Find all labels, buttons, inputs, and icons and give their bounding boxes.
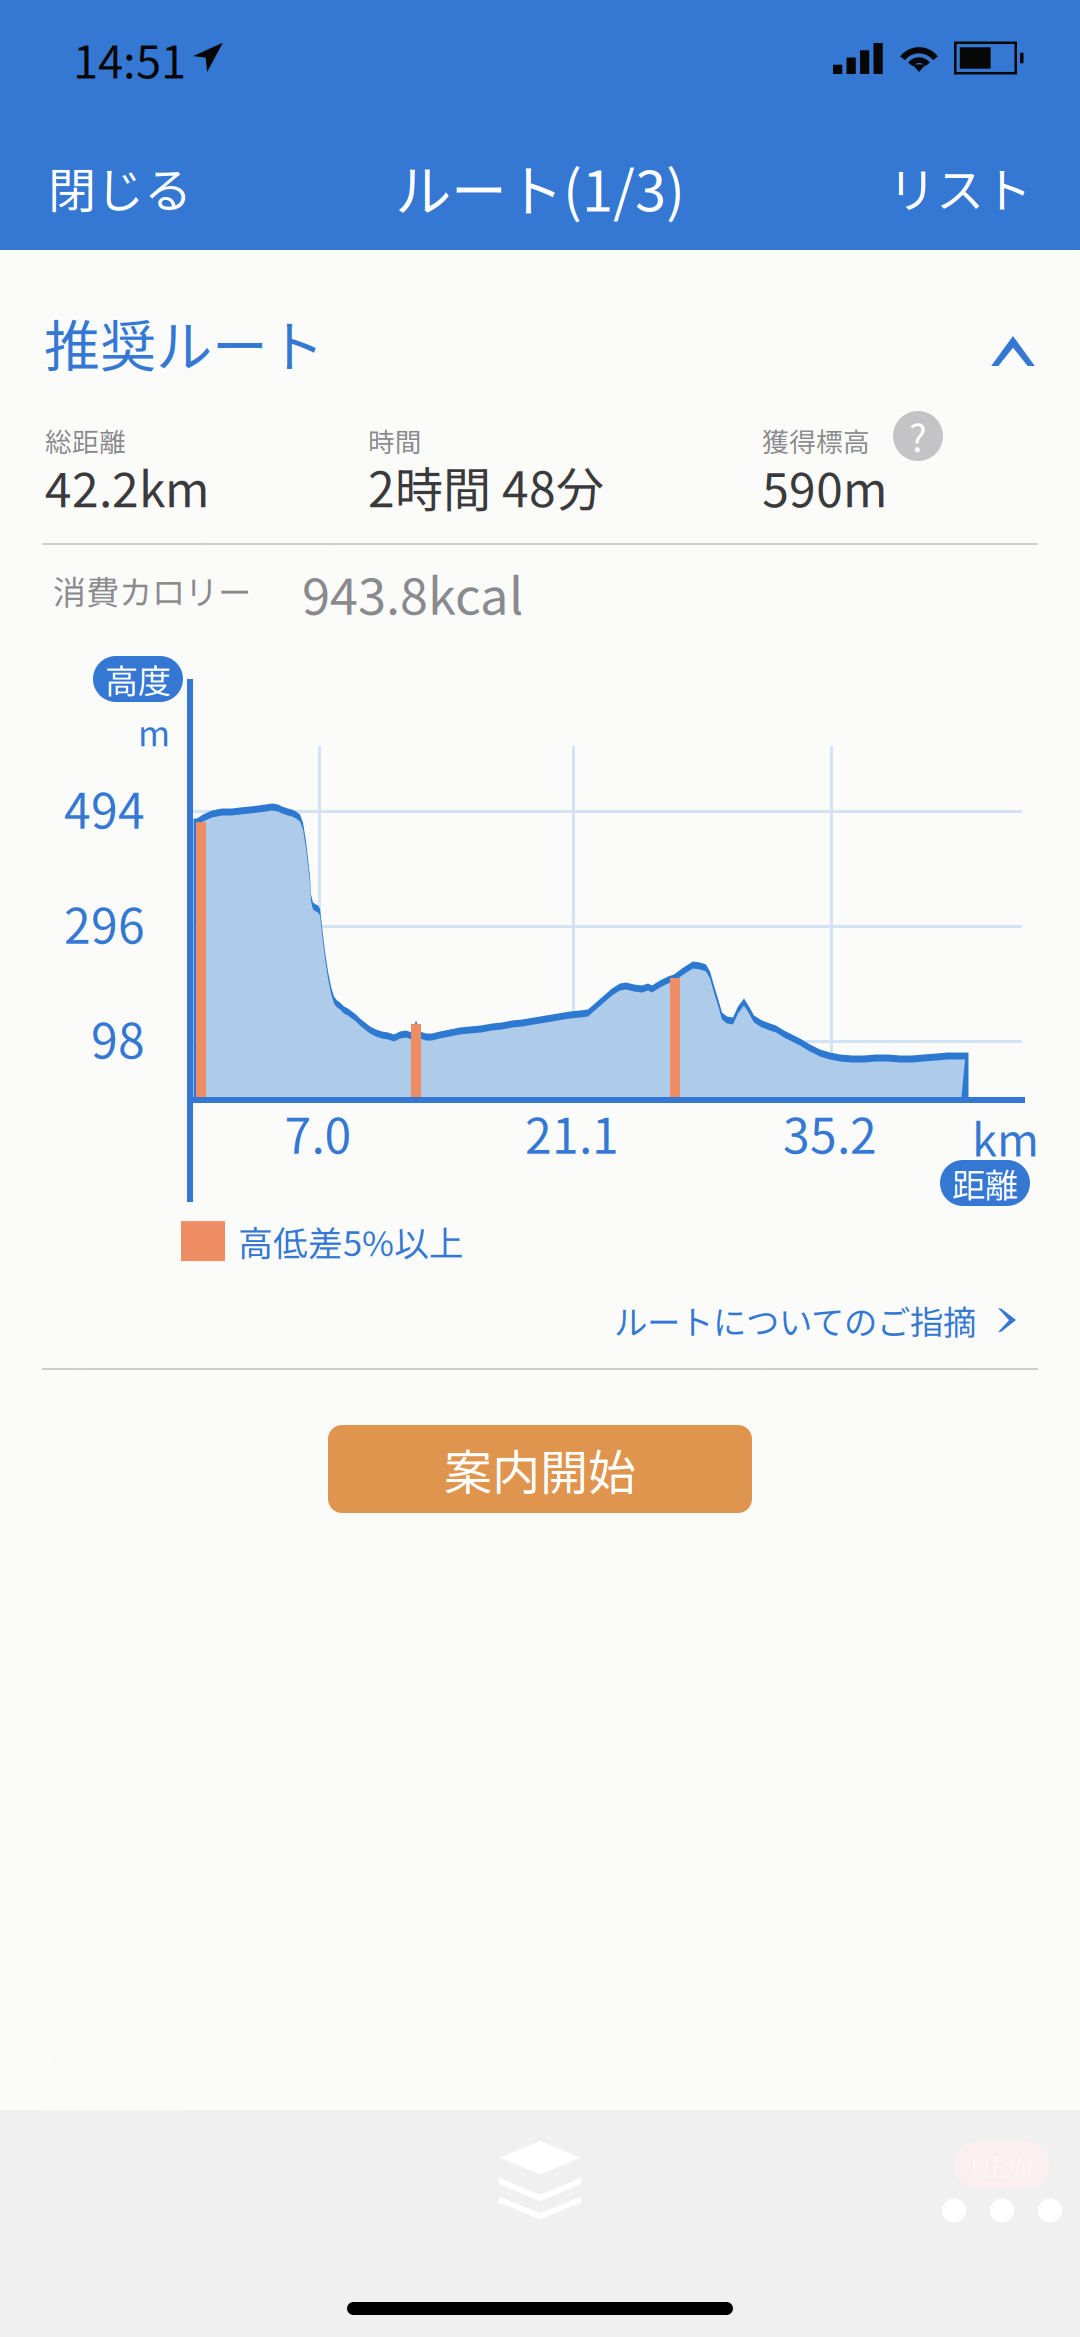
staticText: km xyxy=(972,1104,1039,1170)
staticText: 高低差5%以上 xyxy=(238,1216,464,1266)
staticText: ルートについてのご指摘 xyxy=(614,1296,976,1344)
staticText: 推奨ルート xyxy=(44,302,324,383)
staticText: 21.1 xyxy=(525,1098,619,1167)
staticText: 590m xyxy=(762,452,887,521)
button[interactable]: 案内開始 xyxy=(328,1425,752,1513)
staticText: ? xyxy=(909,409,927,463)
staticText: 35.2 xyxy=(783,1098,877,1167)
staticText: 42.2km xyxy=(45,452,209,521)
staticText: 消費カロリー xyxy=(53,566,251,614)
staticText: ルート(1/3) xyxy=(395,146,685,228)
staticText: 943.8kcal xyxy=(302,556,523,629)
button[interactable]: リスト xyxy=(866,130,1054,244)
button[interactable]: 閉じる xyxy=(26,130,214,244)
staticText: 時間 xyxy=(368,421,422,460)
staticText: m xyxy=(138,706,170,756)
staticText: リスト xyxy=(888,152,1032,222)
staticText: 高度 xyxy=(105,655,171,703)
button[interactable]: About elevation gain xyxy=(881,399,955,473)
staticText: 獲得標高 xyxy=(762,421,870,460)
staticText: 閉じる xyxy=(48,152,192,222)
button[interactable]: More options xyxy=(928,2128,1076,2236)
button[interactable]: Map layers xyxy=(475,2117,605,2239)
staticText: 案内開始 xyxy=(444,1434,636,1504)
staticText: 総距離 xyxy=(45,421,126,460)
button[interactable]: ルートについてのご指摘 xyxy=(600,1280,1030,1360)
staticText: 98 xyxy=(91,1003,145,1072)
staticText: 2時間 48分 xyxy=(368,452,604,521)
staticText: 距離 xyxy=(952,1159,1018,1207)
staticText: 296 xyxy=(64,888,145,957)
staticText: 14:51 xyxy=(73,26,186,92)
staticText: 494 xyxy=(64,773,145,842)
button[interactable]: Collapse route details xyxy=(962,310,1064,392)
staticText: 7.0 xyxy=(284,1098,351,1167)
